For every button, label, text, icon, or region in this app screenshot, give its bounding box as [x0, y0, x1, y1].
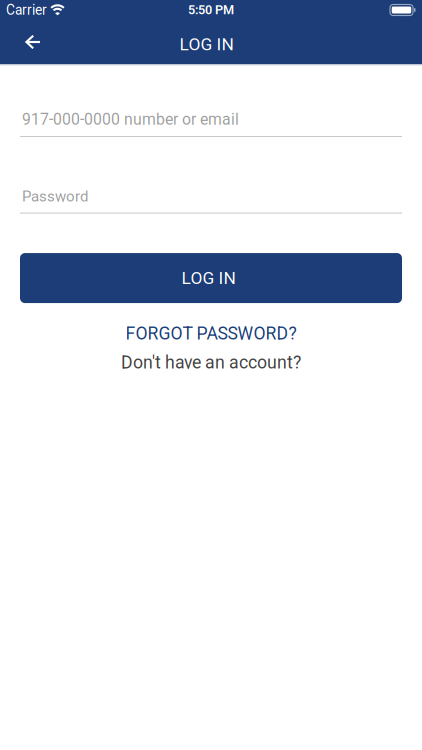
button[interactable]: Don't have an account? — [121, 352, 301, 373]
button[interactable] — [0, 20, 53, 64]
staticText: LOG IN — [179, 34, 233, 54]
button[interactable]: LOG IN — [20, 253, 402, 303]
staticText: 5:50 PM — [188, 2, 234, 17]
button[interactable]: Password — [0, 187, 422, 214]
staticText: Carrier — [6, 2, 47, 18]
staticText: 917-000-0000 number or email — [22, 110, 239, 128]
button[interactable]: FORGOT PASSWORD? — [125, 323, 296, 344]
staticText: Password — [22, 187, 88, 205]
staticText: LOG IN — [181, 268, 235, 288]
button[interactable]: 917-000-0000 number or email — [0, 110, 422, 137]
staticText: Don't have an account? — [121, 352, 301, 373]
staticText: FORGOT PASSWORD? — [125, 323, 296, 344]
